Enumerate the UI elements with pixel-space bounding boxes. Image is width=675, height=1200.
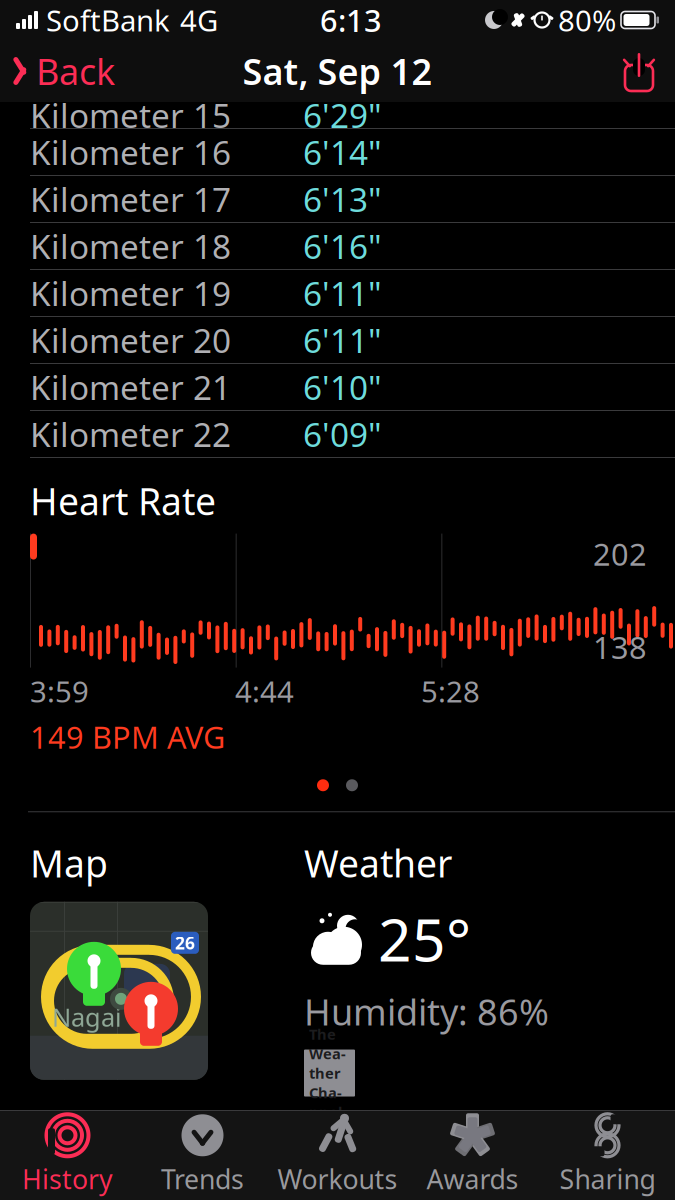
staticText: 6'13" [303,177,382,221]
staticText: Nagai Pa [52,1000,158,1034]
staticText: Awards [426,1161,518,1197]
staticText: 202 [593,534,647,574]
staticText: Weather [309,1044,346,1083]
staticText: 6'10" [303,365,382,409]
staticText: 6'29" [303,93,382,137]
staticText: Back [36,47,115,95]
button[interactable]: Awards [405,1104,540,1200]
staticText: 138 [593,627,647,668]
staticText: 6'11" [303,271,382,315]
button[interactable]: Sharing [540,1104,675,1200]
staticText: 6'11" [303,318,382,362]
staticText: 6'16" [303,224,382,268]
button[interactable]: History [0,1104,135,1200]
staticText: Kilometer 21 [30,365,231,409]
staticText: 6'09" [303,412,382,456]
staticText: Trends [161,1161,244,1197]
staticText: Kilometer 19 [30,271,231,315]
staticText: Weather [304,838,452,888]
staticText: Sharing [559,1161,655,1197]
staticText: Humidity: 86% [304,988,549,1035]
button[interactable]: Share [621,49,675,93]
staticText: The [309,1024,336,1044]
staticText: 4G [180,0,218,39]
staticText: 80% [558,0,616,39]
staticText: Kilometer 20 [30,318,231,362]
staticText: History [22,1161,113,1197]
button[interactable]: Trends [135,1104,270,1200]
staticText: 149 BPM AVG [30,716,225,757]
staticText: 6:13 [320,0,382,40]
staticText: Kilometer 16 [30,130,231,174]
button[interactable]: Back [0,41,115,101]
staticText: 4:44 [235,672,294,711]
button[interactable]: Workouts [270,1104,405,1200]
staticText: Channel [309,1083,342,1122]
staticText: 25° [378,900,471,978]
staticText: Kilometer 22 [30,412,231,456]
staticText: 5:28 [421,672,480,711]
staticText: SoftBank [46,0,170,39]
staticText: Kilometer 18 [30,224,231,268]
staticText: Sat, Sep 12 [242,47,432,95]
staticText: 3:59 [30,672,89,711]
staticText: Kilometer 15 [30,93,231,137]
staticText: Workouts [277,1161,397,1197]
staticText: Map [30,838,108,888]
button[interactable]: Map [30,888,208,1080]
staticText: Kilometer 17 [30,177,231,221]
staticText: Heart Rate [30,476,216,526]
staticText: 6'14" [303,130,382,174]
staticText: 26 [175,931,195,954]
